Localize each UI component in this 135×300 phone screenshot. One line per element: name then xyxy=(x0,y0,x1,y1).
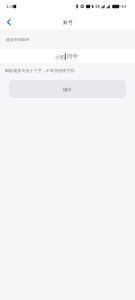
staticText: 昵称最多支持十个字，不支持特殊字符。 xyxy=(5,68,79,73)
staticText: 4:08 xyxy=(6,4,14,9)
staticText: 同学 xyxy=(67,53,78,60)
button[interactable]: 确定 xyxy=(9,80,126,98)
staticText: 确定 xyxy=(63,87,72,92)
staticText: 账号 xyxy=(63,19,73,25)
button[interactable]: Back xyxy=(0,12,17,29)
staticText: 小明 xyxy=(55,54,65,60)
staticText: 修改您的昵称 xyxy=(6,37,30,42)
